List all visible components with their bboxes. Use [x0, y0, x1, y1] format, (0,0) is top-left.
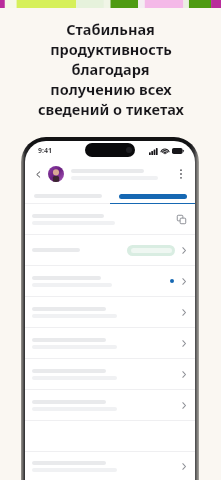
button[interactable] — [25, 188, 110, 204]
button[interactable]: Back — [32, 168, 45, 181]
button[interactable]: Copy — [25, 204, 195, 234]
button[interactable] — [25, 266, 195, 296]
button[interactable] — [25, 297, 195, 327]
staticText: получению всех — [50, 79, 172, 99]
staticText: Стабильная — [66, 19, 155, 39]
button[interactable] — [25, 328, 195, 358]
button[interactable] — [25, 359, 195, 389]
button[interactable]: Profile — [48, 166, 64, 182]
button[interactable] — [127, 245, 175, 256]
button[interactable]: Copy — [175, 213, 187, 225]
button[interactable]: More options — [176, 166, 186, 182]
button[interactable] — [25, 452, 195, 480]
button[interactable] — [25, 235, 195, 265]
button[interactable] — [25, 390, 195, 420]
staticText: продуктивность — [50, 39, 172, 59]
button[interactable] — [110, 188, 195, 204]
staticText: сведений о тикетах — [38, 99, 184, 119]
staticText: 9:41 — [38, 146, 52, 156]
staticText: благодаря — [71, 59, 150, 79]
